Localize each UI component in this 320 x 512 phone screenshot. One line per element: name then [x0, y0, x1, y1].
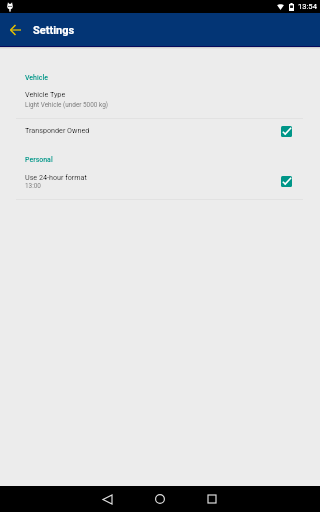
button[interactable]: Use 24-hour format	[0, 173, 320, 190]
button[interactable]: Transponder Owned	[0, 126, 320, 134]
button[interactable]: Vehicle Type	[0, 90, 320, 109]
staticText: 13:54	[298, 2, 317, 11]
button[interactable]: Recent apps	[188, 486, 236, 512]
button[interactable]: Checkbox	[281, 176, 292, 187]
staticText: Use 24-hour format	[25, 173, 87, 181]
staticText: Light Vehicle (under 5000 kg)	[25, 101, 108, 109]
staticText: Vehicle	[25, 74, 48, 82]
button[interactable]: Back	[0, 15, 30, 45]
staticText: Personal	[25, 156, 53, 164]
button[interactable]: Home	[132, 486, 188, 512]
staticText: 13:00	[25, 182, 41, 190]
staticText: Settings	[33, 24, 75, 37]
staticText: Transponder Owned	[25, 126, 90, 134]
button[interactable]: Back	[83, 486, 132, 512]
staticText: Vehicle Type	[25, 90, 66, 98]
button[interactable]: Checkbox	[281, 126, 292, 137]
